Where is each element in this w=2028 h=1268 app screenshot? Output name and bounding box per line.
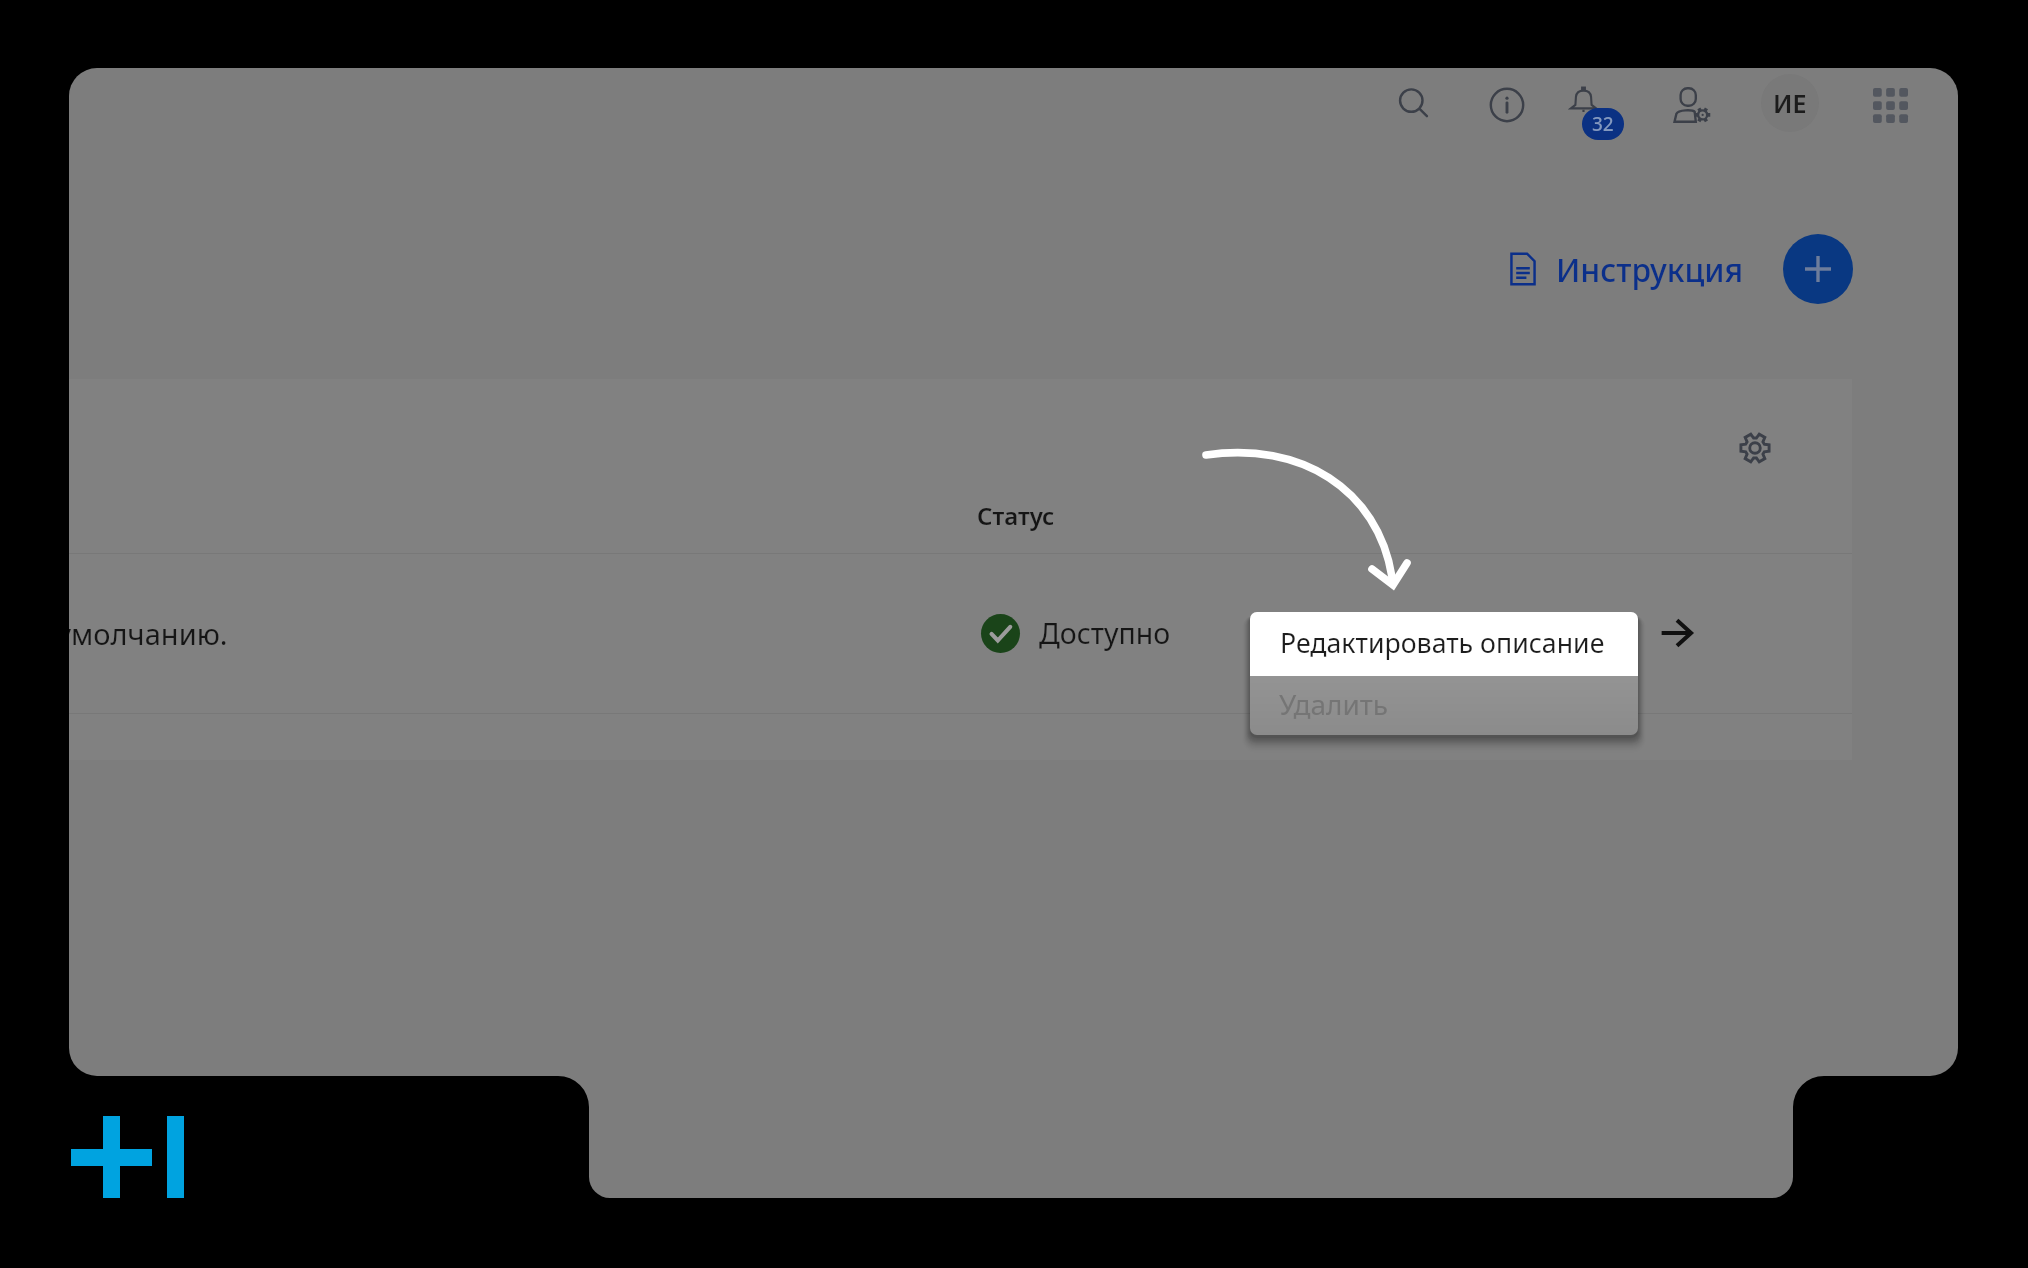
button[interactable]: Инструкция bbox=[1506, 242, 1744, 296]
button[interactable]: Удалить bbox=[1250, 676, 1638, 735]
button[interactable]: Notifications bbox=[1549, 72, 1641, 148]
staticText: по умолчанию. bbox=[69, 614, 228, 653]
button[interactable]: Open bbox=[1656, 612, 1698, 654]
staticText: Статус bbox=[977, 499, 1055, 532]
button[interactable]: Доступно bbox=[981, 608, 1171, 658]
staticText: ИЕ bbox=[1773, 86, 1807, 120]
staticText: Инструкция bbox=[1556, 248, 1744, 291]
staticText: Доступно bbox=[1039, 614, 1171, 653]
button[interactable]: Settings bbox=[1731, 424, 1779, 472]
staticText: Удалить bbox=[1279, 685, 1389, 723]
button[interactable]: Account ИЕ bbox=[1761, 74, 1819, 132]
button[interactable]: Account settings bbox=[1658, 71, 1726, 139]
button[interactable]: Search bbox=[1380, 70, 1448, 138]
button[interactable]: Apps bbox=[1856, 71, 1924, 139]
staticText: 32 bbox=[1592, 111, 1614, 137]
button[interactable]: Редактировать описание bbox=[1250, 612, 1638, 676]
button[interactable]: Information bbox=[1473, 71, 1541, 139]
button[interactable]: Add bbox=[1783, 234, 1853, 304]
staticText: Редактировать описание bbox=[1280, 624, 1605, 660]
